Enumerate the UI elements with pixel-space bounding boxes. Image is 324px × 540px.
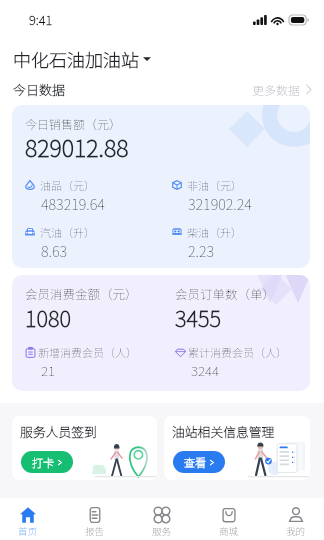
staticText: 会员订单数（单）: [175, 284, 276, 302]
staticText: 321902.24: [188, 193, 252, 214]
staticText: 汽油（升）: [40, 224, 95, 240]
button[interactable]: 中化石油加油站: [13, 46, 151, 72]
staticText: 商城: [219, 524, 239, 538]
staticText: 油品（元）: [40, 177, 95, 193]
staticText: 非油（元）: [187, 177, 242, 193]
staticText: 查看: [184, 454, 206, 470]
staticText: 8.63: [41, 240, 68, 261]
staticText: 3455: [175, 301, 221, 333]
staticText: 21: [41, 360, 56, 380]
button[interactable]: 油站相关信息管理: [164, 416, 310, 480]
button[interactable]: 服务人员签到: [12, 416, 157, 480]
staticText: 3244: [191, 360, 220, 380]
staticText: 更多数据: [252, 81, 301, 98]
button[interactable]: 会员消费金额（元）: [12, 275, 310, 391]
staticText: 服务人员签到: [20, 422, 97, 441]
staticText: 服务: [152, 524, 172, 538]
staticText: 2.23: [188, 240, 215, 261]
staticText: 今日销售额（元）: [25, 115, 122, 132]
staticText: 中化石油加油站: [13, 46, 139, 72]
staticText: 9:41: [29, 10, 53, 29]
staticText: 829012.88: [25, 130, 129, 164]
button[interactable]: 我的: [270, 507, 322, 538]
button[interactable]: 查看: [184, 451, 214, 473]
button[interactable]: 更多数据: [252, 81, 312, 98]
staticText: 油站相关信息管理: [172, 422, 275, 441]
staticText: 会员消费金额（元）: [25, 284, 138, 302]
staticText: 我的: [286, 524, 306, 538]
staticText: 新增消费会员（人）: [38, 344, 137, 360]
staticText: 今日数据: [13, 80, 66, 98]
staticText: 1080: [25, 301, 71, 333]
button[interactable]: 今日销售额（元）: [12, 105, 310, 268]
staticText: 打卡: [32, 454, 54, 470]
button[interactable]: 服务: [136, 507, 188, 538]
staticText: 柴油（升）: [187, 224, 242, 240]
button[interactable]: 打卡: [32, 451, 62, 473]
button[interactable]: 商城: [203, 507, 255, 538]
staticText: 累计消费会员（人）: [188, 344, 287, 360]
button[interactable]: 首页: [2, 507, 54, 538]
staticText: 483219.64: [41, 193, 105, 214]
button[interactable]: 报告: [69, 507, 121, 538]
staticText: 首页: [18, 524, 38, 538]
staticText: 报告: [85, 524, 105, 538]
